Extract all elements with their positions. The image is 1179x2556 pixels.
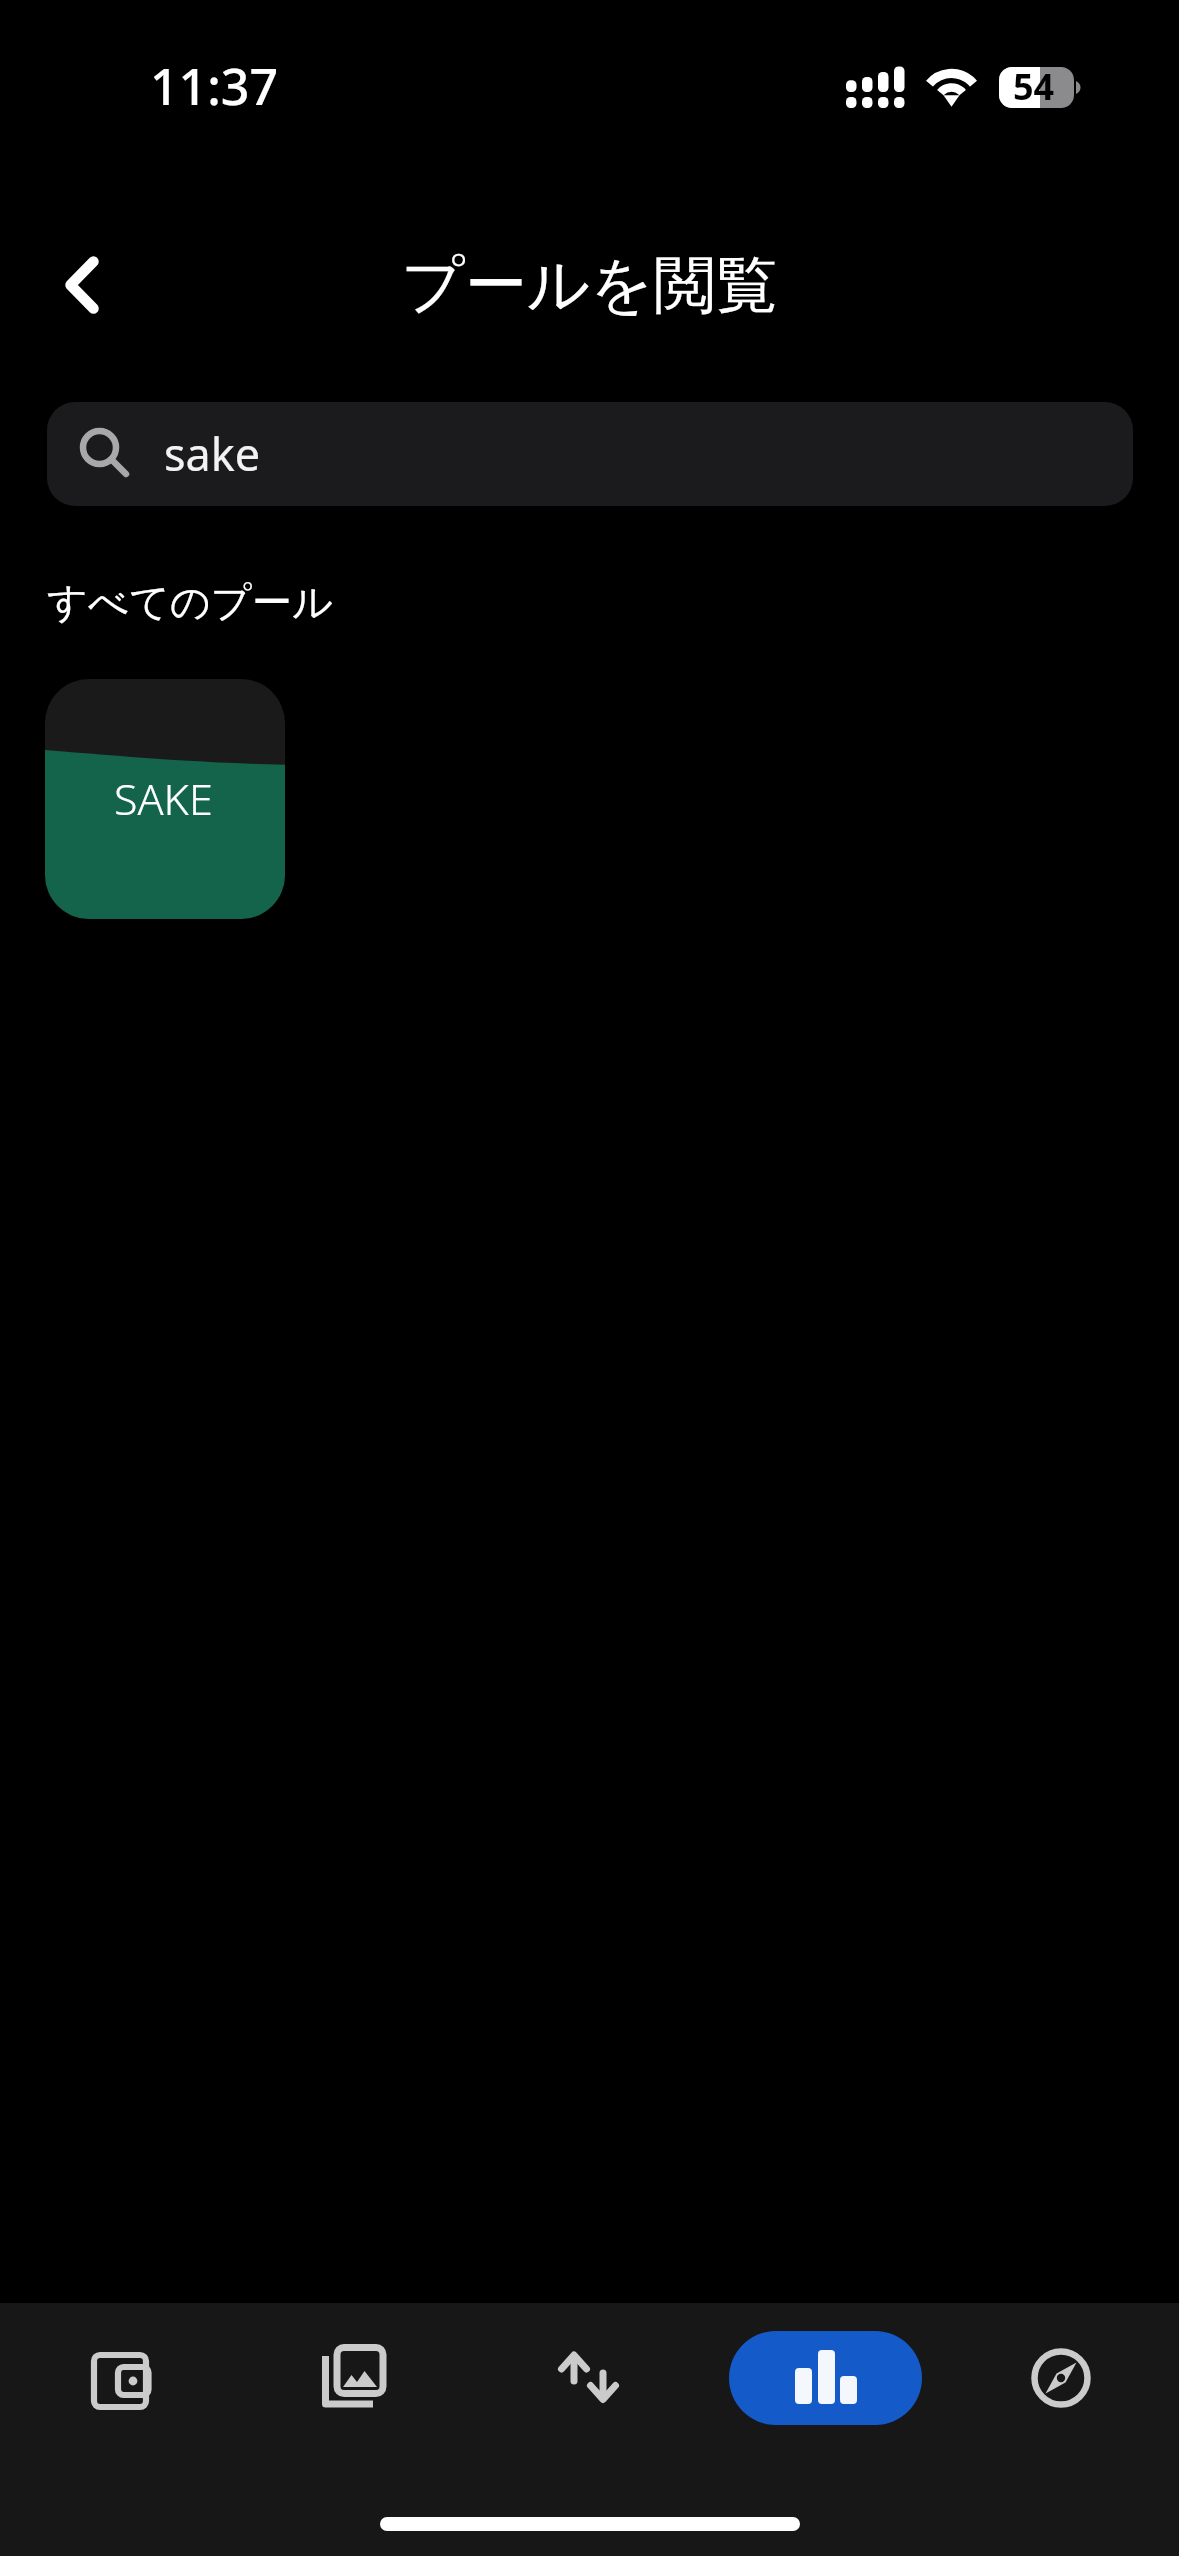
- button[interactable]: Wallet: [0, 2331, 235, 2425]
- button[interactable]: Statistics: [707, 2331, 943, 2425]
- staticText: プールを閲覧: [0, 246, 1179, 324]
- button[interactable]: Explore: [943, 2331, 1179, 2425]
- button[interactable]: Transfer: [471, 2331, 707, 2425]
- button[interactable]: Back: [32, 237, 132, 333]
- button[interactable]: SAKE: [45, 679, 285, 919]
- button[interactable]: Gallery: [235, 2331, 471, 2425]
- button[interactable]: sake: [47, 402, 1133, 506]
- staticText: すべてのプール: [47, 577, 333, 627]
- staticText: 54: [1013, 62, 1055, 111]
- staticText: 11:37: [150, 52, 278, 120]
- staticText: sake: [164, 423, 261, 484]
- staticText: SAKE: [114, 769, 213, 828]
